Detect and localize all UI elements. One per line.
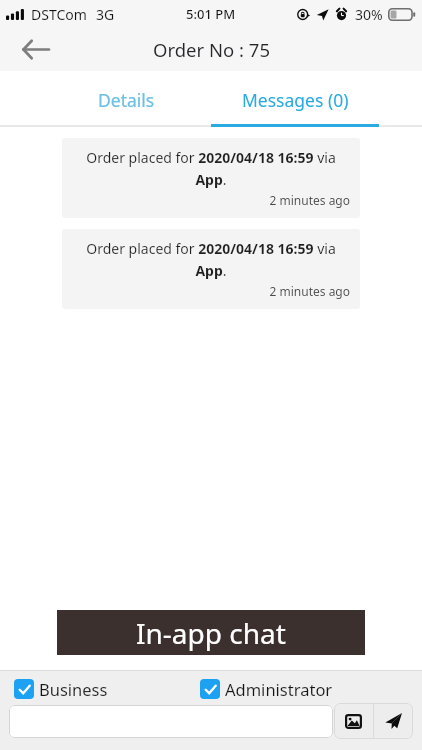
staticText: Order placed for 2020/04/18 16:59 via Ap… [72, 239, 350, 280]
button[interactable]: Administrator [200, 678, 333, 700]
staticText: Messages (0) [242, 88, 349, 112]
staticText: Details [98, 88, 155, 112]
button[interactable]: Message input [9, 705, 333, 738]
button[interactable]: Back [13, 28, 57, 71]
button[interactable]: Business [14, 678, 108, 700]
staticText: 2 minutes ago [72, 283, 350, 299]
staticText: Administrator [225, 678, 333, 700]
button[interactable]: Attach image [334, 703, 373, 739]
button[interactable]: Order placed for 2020/04/18 16:59 via Ap… [62, 138, 360, 218]
staticText: DSTCom [31, 5, 87, 24]
button[interactable]: In-app chat [57, 610, 365, 655]
staticText: 3G [96, 5, 115, 24]
button[interactable]: Order placed for 2020/04/18 16:59 via Ap… [62, 229, 360, 309]
button[interactable]: Messages (0) [211, 73, 380, 127]
staticText: Business [39, 678, 108, 700]
button[interactable]: Send [374, 703, 413, 739]
button[interactable]: Details [42, 73, 211, 127]
staticText: In-app chat [136, 614, 286, 652]
staticText: 5:01 PM [186, 5, 236, 23]
staticText: 2 minutes ago [72, 192, 350, 208]
staticText: Order placed for 2020/04/18 16:59 via Ap… [72, 148, 350, 189]
staticText: 30% [355, 5, 383, 24]
staticText: Order No : 75 [153, 37, 270, 62]
